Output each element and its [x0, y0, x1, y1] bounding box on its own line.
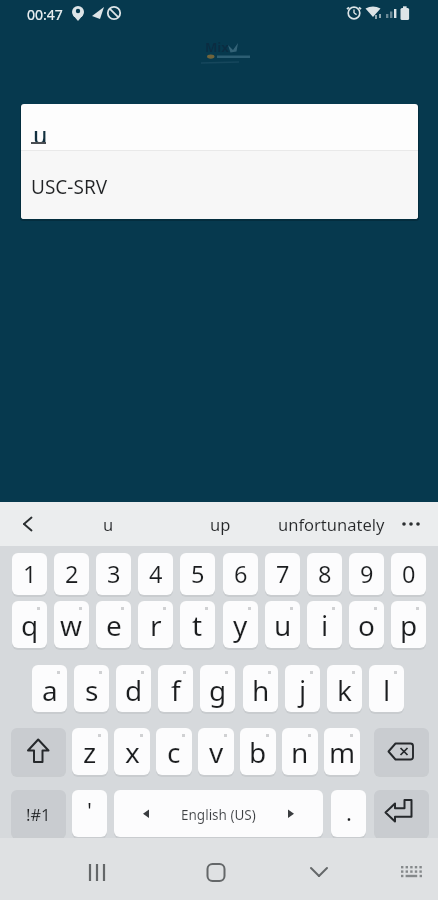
button[interactable]: h	[243, 665, 278, 712]
staticText: h	[252, 671, 270, 709]
staticText: x	[125, 733, 140, 771]
staticText: 00:47	[27, 5, 63, 24]
staticText: u	[274, 606, 292, 644]
button[interactable]: i	[307, 601, 342, 648]
button[interactable]: a	[32, 665, 67, 712]
staticText: i	[321, 606, 329, 644]
staticText: o	[358, 606, 375, 644]
staticText: up	[210, 513, 231, 535]
button[interactable]: v	[198, 728, 234, 775]
button[interactable]: 6	[223, 553, 258, 595]
staticText: m	[329, 733, 356, 771]
button[interactable]: r	[138, 601, 173, 648]
staticText: n	[291, 733, 309, 771]
button[interactable]: t	[180, 601, 215, 648]
staticText: 5	[191, 558, 205, 590]
button[interactable]	[395, 838, 430, 900]
staticText: 2	[65, 558, 79, 590]
staticText: .	[346, 797, 352, 827]
staticText: USC-SRV	[31, 174, 108, 200]
staticText: English (US)	[181, 806, 256, 824]
button[interactable]: 8	[307, 553, 342, 595]
button[interactable]: p	[391, 601, 426, 648]
staticText: b	[249, 733, 267, 771]
staticText: y	[233, 606, 248, 644]
button[interactable]: y	[223, 601, 258, 648]
staticText: 6	[234, 558, 248, 590]
staticText: s	[85, 671, 99, 709]
button[interactable]	[374, 728, 429, 775]
button[interactable]: d	[116, 665, 151, 712]
button[interactable]: u	[62, 502, 154, 546]
staticText: 4	[149, 558, 163, 590]
staticText: c	[167, 733, 181, 771]
staticText: f	[171, 671, 181, 709]
staticText: p	[400, 606, 418, 644]
button[interactable]: 2	[54, 553, 89, 595]
button[interactable]: u	[265, 601, 300, 648]
staticText: 9	[360, 558, 374, 590]
staticText: !#1	[26, 803, 51, 825]
staticText: unfortunately	[278, 513, 385, 535]
staticText: 7	[276, 558, 290, 590]
staticText: a	[42, 671, 58, 709]
button[interactable]: 4	[138, 553, 173, 595]
staticText: u	[103, 513, 114, 535]
button[interactable]: 5	[180, 553, 215, 595]
button[interactable]: unfortunately	[277, 502, 385, 546]
staticText: z	[83, 733, 97, 771]
staticText: u	[33, 119, 48, 150]
button[interactable]: f	[158, 665, 193, 712]
button[interactable]: 3	[96, 553, 131, 595]
button[interactable]	[289, 838, 349, 900]
staticText: 8	[318, 558, 332, 590]
button[interactable]: o	[349, 601, 384, 648]
staticText: t	[192, 606, 203, 644]
staticText: Mix	[205, 38, 229, 56]
button[interactable]: k	[327, 665, 362, 712]
button[interactable]: English (US)	[114, 790, 323, 837]
staticText: 3	[107, 558, 121, 590]
staticText: q	[21, 606, 39, 644]
button[interactable]: c	[156, 728, 192, 775]
button[interactable]: e	[96, 601, 131, 648]
staticText: j	[299, 671, 307, 709]
button[interactable]: !#1	[11, 790, 66, 837]
button[interactable]	[374, 790, 429, 837]
button[interactable]: USC-SRV	[21, 151, 418, 219]
staticText: k	[337, 671, 352, 709]
staticText: d	[125, 671, 143, 709]
button[interactable]	[11, 728, 66, 775]
button[interactable]: 1	[12, 553, 47, 595]
button[interactable]: up	[174, 502, 266, 546]
staticText: v	[209, 733, 224, 771]
staticText: '	[87, 795, 92, 825]
button[interactable]: b	[240, 728, 276, 775]
button[interactable]: g	[200, 665, 235, 712]
staticText: r	[150, 606, 162, 644]
button[interactable]	[70, 838, 130, 900]
button[interactable]: l	[369, 665, 404, 712]
button[interactable]: 9	[349, 553, 384, 595]
button[interactable]: q	[12, 601, 47, 648]
button[interactable]	[186, 838, 246, 900]
button[interactable]: 0	[391, 553, 426, 595]
staticText: 0	[402, 558, 416, 590]
button[interactable]: w	[54, 601, 89, 648]
staticText: w	[60, 606, 83, 644]
button[interactable]: m	[324, 728, 360, 775]
staticText: l	[383, 671, 391, 709]
button[interactable]: j	[285, 665, 320, 712]
button[interactable]: '	[72, 790, 107, 837]
button[interactable]: z	[72, 728, 108, 775]
button[interactable]: x	[114, 728, 150, 775]
button[interactable]: n	[282, 728, 318, 775]
staticText: e	[106, 606, 122, 644]
staticText: g	[209, 671, 227, 709]
button[interactable]: .	[331, 790, 366, 837]
button[interactable]: s	[74, 665, 109, 712]
button[interactable]: 7	[265, 553, 300, 595]
staticText: 1	[23, 558, 37, 590]
